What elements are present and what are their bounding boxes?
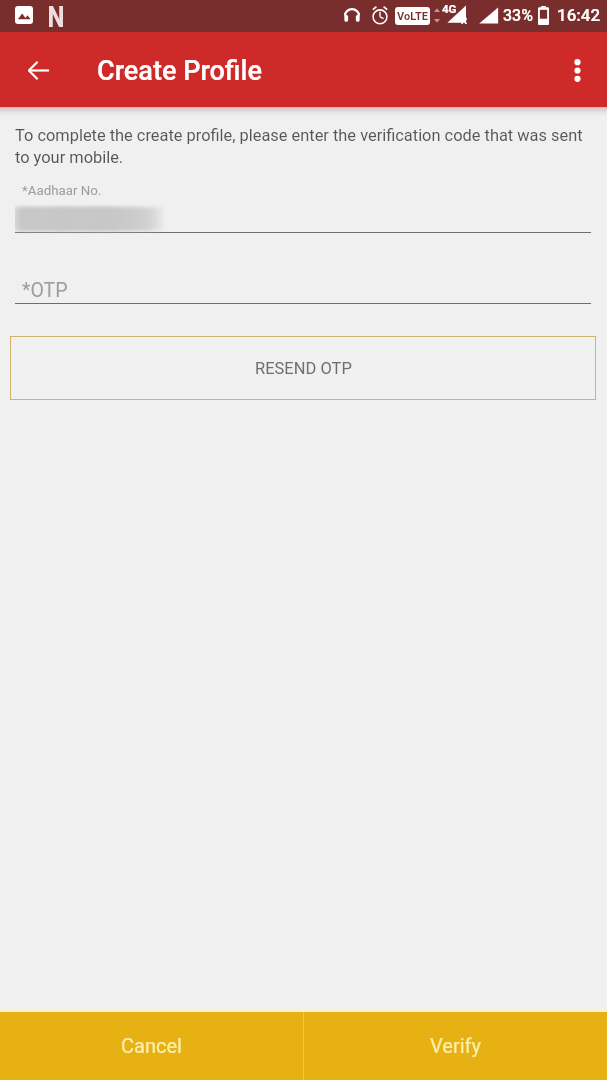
button[interactable]: Back xyxy=(14,46,62,94)
button[interactable]: Verify xyxy=(304,1010,607,1080)
staticText: *Aadhaar No. xyxy=(22,183,102,199)
staticText: 16:42 xyxy=(557,5,601,25)
staticText: Create Profile xyxy=(97,55,262,87)
staticText: Verify xyxy=(430,1034,481,1057)
button[interactable]: Cancel xyxy=(0,1010,303,1080)
staticText: To complete the create profile, please e… xyxy=(15,126,592,167)
staticText: RESEND OTP xyxy=(255,359,352,378)
staticText: VoLTE xyxy=(397,10,429,23)
staticText: 33% xyxy=(503,6,533,25)
staticText: *OTP xyxy=(22,279,68,302)
button[interactable]: RESEND OTP xyxy=(10,336,596,400)
button[interactable]: More options xyxy=(553,46,601,94)
staticText: Cancel xyxy=(121,1034,182,1057)
staticText: R xyxy=(461,15,468,26)
staticText: 4G xyxy=(442,2,457,15)
